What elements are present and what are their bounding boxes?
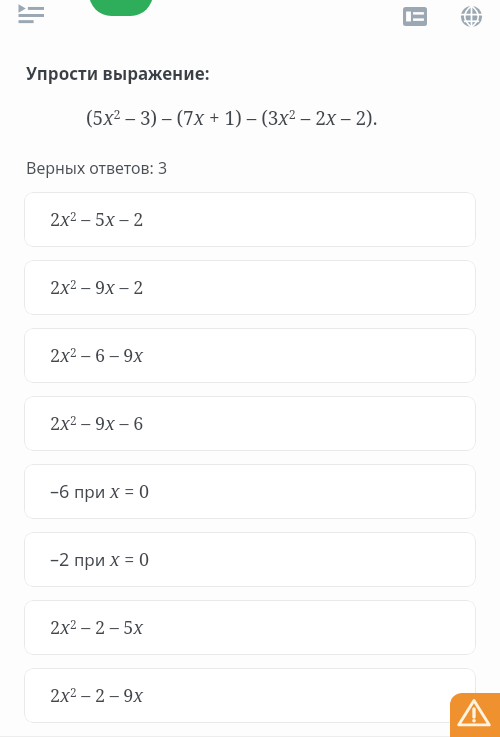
button[interactable]: Language [457, 2, 486, 31]
staticText: 2x2 – 9x – 6 [50, 411, 144, 436]
button[interactable]: 2x2 – 6 – 9x [24, 328, 476, 383]
staticText: –6 при x = 0 [50, 479, 150, 504]
staticText: 2x2 – 2 – 5x [50, 615, 144, 640]
staticText: –2 при x = 0 [50, 547, 150, 572]
button[interactable]: Menu [18, 3, 44, 25]
button[interactable]: Online Mektep [89, 0, 153, 16]
staticText: (5x2 – 3) – (7x + 1) – (3x2 – 2x – 2). [86, 105, 378, 131]
staticText: 2x2 – 2 – 9x [50, 683, 144, 708]
button[interactable]: 2x2 – 9x – 2 [24, 260, 476, 315]
staticText: 2x2 – 9x – 2 [50, 275, 144, 300]
button[interactable]: –2 при x = 0 [24, 532, 476, 587]
button[interactable]: 2x2 – 2 – 9x [24, 668, 476, 723]
button[interactable]: Lessons list [399, 3, 431, 30]
button[interactable]: 2x2 – 5x – 2 [24, 192, 476, 247]
button[interactable]: Report a problem [450, 693, 500, 737]
button[interactable]: –6 при x = 0 [24, 464, 476, 519]
staticText: Верных ответов: 3 [26, 157, 168, 179]
staticText: 2x2 – 6 – 9x [50, 343, 144, 368]
staticText: Упрости выражение: [26, 62, 210, 85]
button[interactable]: 2x2 – 9x – 6 [24, 396, 476, 451]
button[interactable]: 2x2 – 2 – 5x [24, 600, 476, 655]
staticText: 2x2 – 5x – 2 [50, 207, 144, 232]
